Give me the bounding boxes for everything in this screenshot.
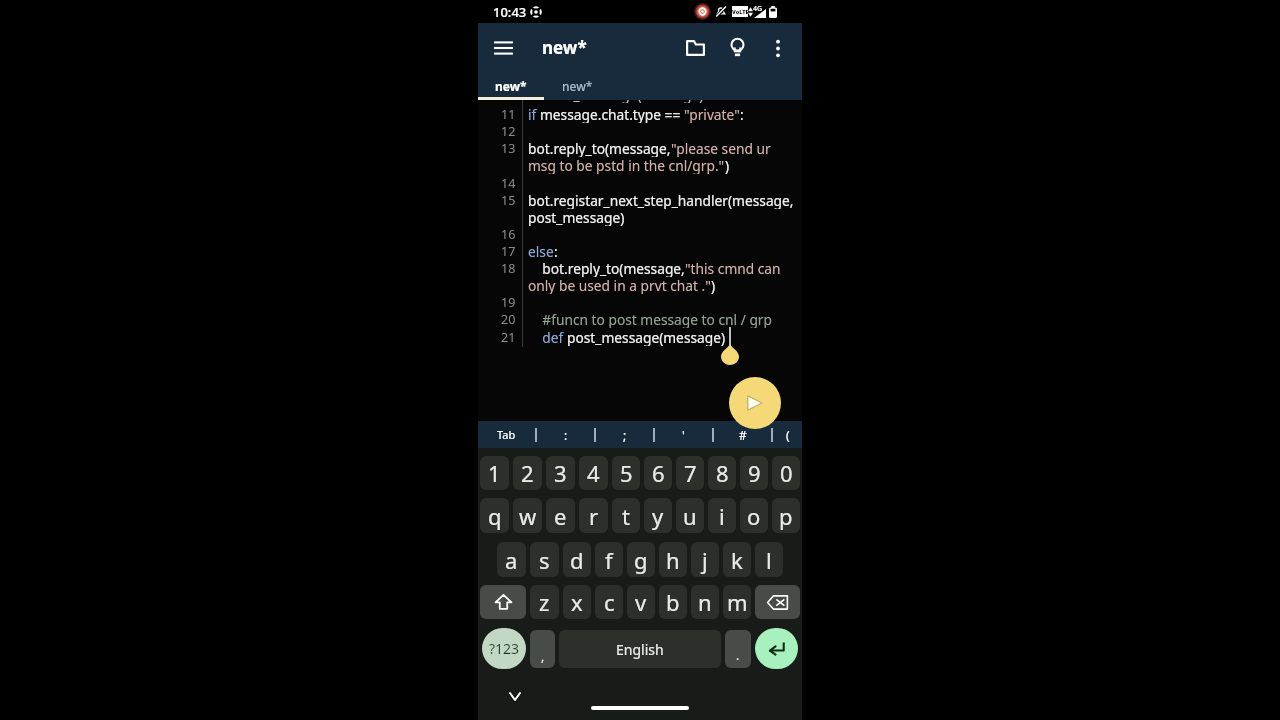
staticText: u [683,501,697,531]
button[interactable]: r [579,498,608,533]
button[interactable]: Backspace [755,585,800,619]
button[interactable]: q [480,498,509,533]
staticText: z [539,587,550,617]
button[interactable]: Shift [480,585,526,619]
staticText: : [554,242,558,260]
button[interactable]: s [530,542,559,577]
button[interactable]: y [644,498,672,533]
button[interactable]: Enter [755,628,798,669]
staticText: 6 [652,458,665,488]
staticText: d [570,545,584,575]
button[interactable]: d [563,542,591,577]
button[interactable]: j [691,542,719,577]
button[interactable]: x [563,585,591,619]
button[interactable]: 7 [676,456,704,490]
button[interactable]: 5 [612,456,640,490]
staticText: # [739,427,747,443]
staticText: 17 [501,243,516,260]
button[interactable]: p [772,498,800,533]
button[interactable]: # [714,421,771,448]
staticText: f [605,545,613,575]
button[interactable]: k [723,542,751,577]
staticText: bot.reply_to(message, [528,139,671,157]
button[interactable]: new* [544,72,610,100]
staticText: post_message(message) [567,328,726,346]
button[interactable]: ' [655,421,712,448]
button[interactable]: Open file [674,27,716,69]
staticText: 2 [521,458,534,488]
staticText: #funcn to post message to cnl / grp [528,310,772,328]
button[interactable]: 3 [546,456,575,490]
staticText: . [736,647,740,663]
button[interactable]: ( [773,421,802,448]
button[interactable]: 1 [480,456,509,490]
button[interactable]: English [559,630,721,668]
staticText: "please send ur [671,139,771,157]
staticText: 1 [488,458,501,488]
staticText: post_message) [528,208,625,226]
button[interactable]: f [595,542,623,577]
staticText: "this cmnd can [685,259,781,277]
button[interactable]: 9 [740,456,768,490]
staticText: c [604,587,615,617]
button[interactable]: l [755,542,783,577]
button[interactable]: i [708,498,736,533]
button[interactable]: Hide keyboard [503,686,527,706]
button[interactable]: g [627,542,655,577]
staticText: 16 [501,226,516,243]
button[interactable]: More options [758,28,798,68]
button[interactable]: o [740,498,768,533]
staticText: 3 [554,458,567,488]
button[interactable]: 8 [708,456,736,490]
staticText: 5 [620,458,633,488]
staticText: w [519,501,537,531]
staticText: n [698,587,712,617]
button[interactable]: 0 [772,456,800,490]
button[interactable]: 4 [579,456,608,490]
staticText: t [622,501,630,531]
staticText: s [539,545,550,575]
button[interactable]: t [612,498,640,533]
button[interactable]: w [513,498,542,533]
staticText: 4 [587,458,600,488]
staticText: q [488,501,502,531]
staticText: bot.registar_next_step_handler(message, [528,191,794,209]
button[interactable]: c [595,585,623,619]
staticText: ' [682,427,685,443]
button[interactable]: n [691,585,719,619]
staticText: : [740,105,744,123]
staticText: 4G [753,4,763,14]
button[interactable]: Tips [716,27,758,69]
staticText: j [702,545,708,575]
staticText: v [635,587,647,617]
staticText: bot.reply_to(message, [528,259,685,277]
button[interactable]: Run [729,377,781,429]
button[interactable]: 2 [513,456,542,490]
staticText: 9 [748,458,761,488]
staticText: r [589,501,599,531]
button[interactable]: Tab [478,421,535,448]
button[interactable]: , [530,630,555,668]
button[interactable]: v [627,585,655,619]
button[interactable]: e [546,498,575,533]
button[interactable]: u [676,498,704,533]
button[interactable]: h [659,542,687,577]
button[interactable]: b [659,585,687,619]
staticText: new* [562,78,593,94]
button[interactable]: a [497,542,526,577]
staticText: 11 [501,106,516,123]
button[interactable]: z [530,585,559,619]
button[interactable]: 6 [644,456,672,490]
staticText: m [727,587,748,617]
button[interactable]: new* [478,72,544,100]
staticText: ) [725,156,730,174]
staticText: g [634,545,648,575]
button[interactable]: m [723,585,751,619]
button[interactable]: . [725,630,751,668]
button[interactable]: : [537,421,594,448]
staticText: 21 [501,329,516,346]
button[interactable]: ; [596,421,653,448]
button[interactable]: Navigation menu [482,27,524,69]
staticText: x [571,587,583,617]
button[interactable]: ?123 [482,628,526,669]
